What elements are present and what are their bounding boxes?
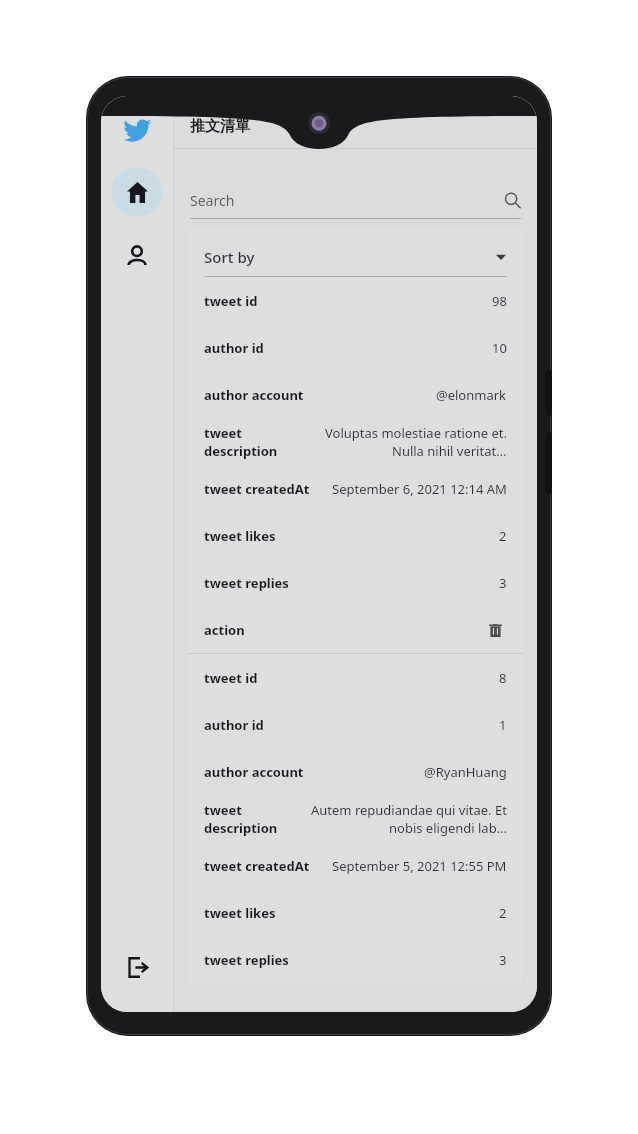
staticText: tweet <box>204 801 242 819</box>
staticText: Voluptas molestiae ratione et. <box>325 424 507 442</box>
button[interactable]: tweet replies <box>204 559 507 606</box>
button[interactable]: tweet likes <box>204 889 507 936</box>
staticText: Sort by <box>204 247 255 267</box>
button[interactable]: tweet replies <box>204 936 507 983</box>
staticText: tweet createdAt <box>204 857 310 875</box>
staticText: 98 <box>492 292 507 310</box>
staticText: 推文清單 <box>190 117 250 136</box>
staticText: tweet id <box>204 669 258 687</box>
button[interactable]: Home <box>111 168 163 216</box>
staticText: tweet likes <box>204 527 276 545</box>
staticText: action <box>204 621 245 639</box>
button[interactable]: tweet createdAt <box>204 842 507 889</box>
staticText: 8 <box>499 669 507 687</box>
button[interactable]: tweet <box>204 795 507 842</box>
staticText: 2 <box>499 527 507 545</box>
staticText: description <box>204 819 278 837</box>
button[interactable]: tweet likes <box>204 512 507 559</box>
staticText: author id <box>204 716 264 734</box>
staticText: author account <box>204 763 304 781</box>
button[interactable]: Profile <box>111 234 163 278</box>
staticText: Search <box>190 191 235 210</box>
staticText: description <box>204 442 278 460</box>
button[interactable]: author account <box>204 748 507 795</box>
button[interactable]: author id <box>204 701 507 748</box>
staticText: Nulla nihil veritat… <box>392 442 507 460</box>
button[interactable]: Search <box>190 191 521 210</box>
button[interactable]: author id <box>204 324 507 371</box>
staticText: author id <box>204 339 264 357</box>
button[interactable]: Sort by <box>204 247 507 267</box>
staticText: tweet replies <box>204 574 289 592</box>
staticText: tweet createdAt <box>204 480 310 498</box>
staticText: tweet likes <box>204 904 276 922</box>
staticText: Autem repudiandae qui vitae. Et <box>311 801 507 819</box>
staticText: September 6, 2021 12:14 AM <box>332 480 507 498</box>
staticText: @RyanHuang <box>424 763 507 781</box>
button[interactable]: tweet <box>204 418 507 465</box>
staticText: 1 <box>499 716 507 734</box>
staticText: tweet id <box>204 292 258 310</box>
button[interactable]: action <box>204 606 507 653</box>
button[interactable]: author account <box>204 371 507 418</box>
button[interactable]: tweet id <box>204 277 507 324</box>
staticText: 2 <box>499 904 507 922</box>
staticText: tweet <box>204 424 242 442</box>
staticText: 3 <box>499 574 507 592</box>
staticText: nobis eligendi lab… <box>389 819 507 837</box>
staticText: 10 <box>492 339 507 357</box>
staticText: September 5, 2021 12:55 PM <box>332 857 507 875</box>
button[interactable]: tweet id <box>204 654 507 701</box>
button[interactable]: Log out <box>111 944 163 990</box>
staticText: author account <box>204 386 304 404</box>
button[interactable]: Twitter <box>114 108 160 154</box>
staticText: tweet replies <box>204 951 289 969</box>
staticText: 3 <box>499 951 507 969</box>
staticText: @elonmark <box>436 386 507 404</box>
button[interactable]: Delete <box>483 618 507 642</box>
button[interactable]: tweet createdAt <box>204 465 507 512</box>
